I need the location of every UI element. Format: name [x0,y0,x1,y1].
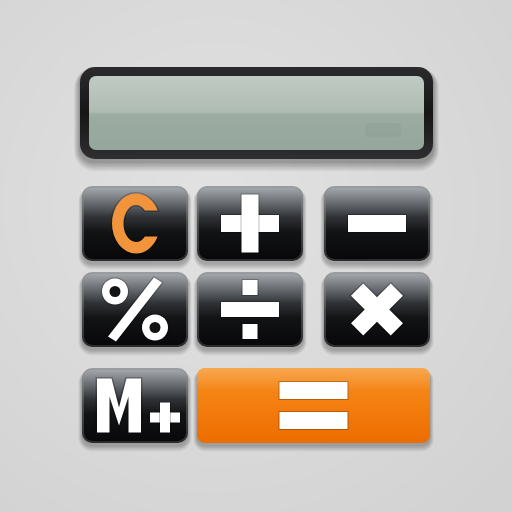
button[interactable]: Plus [197,186,303,261]
button[interactable]: Percent [82,272,188,347]
button[interactable]: Display [80,67,433,159]
button[interactable]: Multiply [324,272,430,347]
button[interactable]: Divide [197,272,303,347]
button[interactable]: Clear [82,186,188,261]
button[interactable]: Memory plus [82,368,188,443]
button[interactable]: Minus [324,186,430,261]
button[interactable]: Equals [197,368,430,443]
